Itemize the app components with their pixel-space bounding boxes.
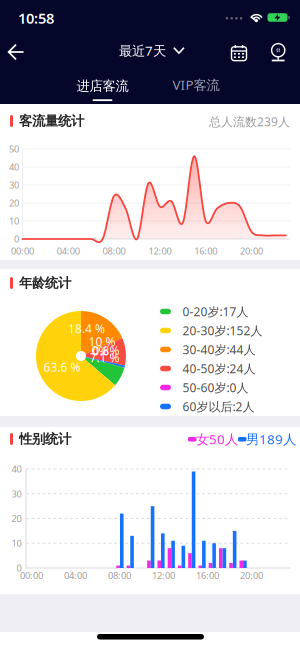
button[interactable]: 最近7天 <box>119 42 185 59</box>
staticText: 08:00 <box>108 569 131 582</box>
staticText: 16:00 <box>194 245 217 257</box>
staticText: 进店客流 <box>76 78 128 94</box>
staticText: 最近7天 <box>119 42 166 59</box>
staticText: 10 % <box>88 333 115 349</box>
staticText: 12:00 <box>148 245 171 257</box>
staticText: 40-50岁:24人 <box>182 360 255 376</box>
staticText: 00:00 <box>11 245 34 257</box>
staticText: 30 <box>11 488 21 500</box>
staticText: 性别统计 <box>19 431 71 447</box>
staticText: 男189人 <box>246 430 296 448</box>
staticText: 10 <box>9 215 19 227</box>
button[interactable]: VIP客流 <box>172 76 219 93</box>
staticText: 16:00 <box>196 569 219 582</box>
staticText: 0-20岁:17人 <box>182 303 248 319</box>
staticText: 60岁以后:2人 <box>182 398 254 414</box>
staticText: 0.8% <box>92 342 119 358</box>
staticText: 年龄统计 <box>19 275 71 291</box>
staticText: 客流量统计 <box>19 113 84 129</box>
staticText: 20:00 <box>240 569 263 582</box>
staticText: 10:58 <box>18 8 54 28</box>
staticText: VIP客流 <box>172 76 219 93</box>
staticText: 08:00 <box>103 245 126 257</box>
staticText: 40 <box>11 463 21 475</box>
staticText: 18.4 % <box>68 320 105 336</box>
staticText: 0 <box>14 233 19 245</box>
staticText: 20 <box>11 512 21 525</box>
staticText: 00:00 <box>20 569 43 582</box>
staticText: 30 <box>9 179 19 191</box>
staticText: 10 <box>11 537 21 549</box>
staticText: 总人流数239人 <box>209 113 290 129</box>
staticText: 50 <box>9 143 19 155</box>
staticText: 0 <box>16 562 21 574</box>
staticText: 20 <box>9 197 19 209</box>
staticText: 女50人 <box>196 430 238 448</box>
staticText: 04:00 <box>57 245 80 257</box>
staticText: 7.1 % <box>89 349 119 365</box>
button[interactable]: Camera <box>267 41 289 63</box>
staticText: 30-40岁:44人 <box>182 341 255 357</box>
staticText: 63.6 % <box>43 359 80 375</box>
staticText: 20:00 <box>240 245 263 257</box>
button[interactable]: Calendar <box>229 43 249 63</box>
staticText: 0% <box>91 342 108 358</box>
staticText: 20-30岁:152人 <box>182 322 262 338</box>
button[interactable]: Back <box>4 40 28 64</box>
staticText: 04:00 <box>64 569 87 582</box>
staticText: 50-60岁:0人 <box>182 379 248 395</box>
staticText: 40 <box>9 161 19 173</box>
button[interactable]: 进店客流 <box>76 78 128 101</box>
staticText: 12:00 <box>152 569 175 582</box>
